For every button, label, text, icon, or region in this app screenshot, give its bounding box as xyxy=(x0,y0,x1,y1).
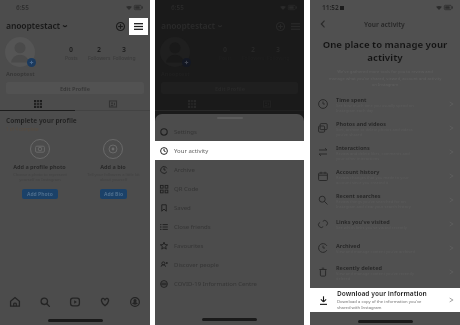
button[interactable]: Home xyxy=(0,293,30,311)
staticText: COVID-19 Information Centre xyxy=(174,280,257,288)
staticText: Add a bio xyxy=(100,163,126,170)
staticText: 3 xyxy=(122,45,127,55)
button[interactable]: Back xyxy=(316,17,330,31)
staticText: 2 xyxy=(251,45,256,55)
staticText: Recent searches xyxy=(336,192,381,199)
button[interactable]: Menu xyxy=(289,15,302,37)
staticText: Download a copy of the information you'v… xyxy=(337,299,422,311)
button[interactable]: Photos and videos xyxy=(310,116,460,140)
staticText: Time spent xyxy=(336,96,367,103)
button[interactable]: Edit Profile xyxy=(6,82,144,94)
staticText: Favourites xyxy=(174,242,204,250)
staticText: anooptestact xyxy=(161,20,216,32)
staticText: 1 of 4 complete xyxy=(6,126,39,132)
staticText: Complete your profile xyxy=(161,116,232,125)
button[interactable]: Links you've visited xyxy=(310,212,460,236)
button[interactable]: Grid tab xyxy=(0,98,75,110)
button[interactable]: Your activity xyxy=(155,141,304,160)
staticText: Anooptest xyxy=(6,70,35,77)
staticText: Followers xyxy=(88,55,111,62)
staticText: Close friends xyxy=(174,223,211,231)
staticText: Links you've visited xyxy=(336,218,390,225)
button[interactable]: COVID-19 Information Centre xyxy=(155,274,304,293)
button[interactable]: Close friends xyxy=(155,217,304,236)
staticText: Download your information xyxy=(337,289,427,298)
button[interactable]: Download your information xyxy=(310,288,460,312)
staticText: 11:52 xyxy=(322,3,339,12)
staticText: QR Code xyxy=(174,185,199,193)
staticText: One place to manage your activity xyxy=(318,38,452,64)
button[interactable]: Add Bio xyxy=(100,189,127,199)
button[interactable]: Recently deleted xyxy=(310,260,460,284)
staticText: Add Photo xyxy=(27,191,53,198)
button[interactable]: Add xyxy=(114,20,127,33)
button[interactable]: Add xyxy=(274,20,287,33)
button[interactable]: Search xyxy=(30,293,60,311)
staticText: 3 xyxy=(276,45,281,55)
button[interactable]: Recent searches xyxy=(310,188,460,212)
staticText: Posts xyxy=(65,55,78,62)
staticText: Your activity xyxy=(364,20,405,29)
staticText: 0 xyxy=(69,45,74,55)
staticText: 6:55 xyxy=(16,3,29,12)
staticText: 0 xyxy=(223,45,228,55)
button[interactable]: Settings xyxy=(155,122,304,141)
staticText: Saved xyxy=(174,204,191,212)
staticText: Photos and videos xyxy=(336,120,386,127)
button[interactable]: Account history xyxy=(310,164,460,188)
staticText: Add Bio xyxy=(104,191,124,198)
staticText: Discover people xyxy=(174,261,219,269)
staticText: 6:55 xyxy=(171,3,184,12)
button[interactable]: Activity xyxy=(90,293,120,311)
button[interactable]: Add Photo xyxy=(22,189,58,199)
button[interactable]: Discover people xyxy=(155,255,304,274)
staticText: Archive xyxy=(174,166,195,174)
staticText: Add a profile photo xyxy=(13,163,66,170)
staticText: Your activity xyxy=(174,147,209,155)
staticText: Complete your profile xyxy=(6,116,77,125)
button[interactable]: Favourites xyxy=(155,236,304,255)
button[interactable]: Saved xyxy=(155,198,304,217)
button[interactable]: Tagged tab xyxy=(75,98,150,110)
button[interactable]: Profile xyxy=(120,293,150,311)
staticText: Archived xyxy=(336,242,361,249)
button[interactable]: Menu xyxy=(129,18,148,35)
staticText: Interactions xyxy=(336,144,370,151)
button[interactable]: Reels xyxy=(60,293,90,311)
staticText: 2 xyxy=(97,45,102,55)
button[interactable]: QR Code xyxy=(155,179,304,198)
staticText: Recently deleted xyxy=(336,264,383,271)
button[interactable]: Archived xyxy=(310,236,460,260)
button[interactable]: Interactions xyxy=(310,140,460,164)
staticText: Edit Profile xyxy=(60,85,90,92)
button[interactable]: Time spent xyxy=(310,92,460,116)
staticText: Settings xyxy=(174,128,197,136)
staticText: anooptestact xyxy=(6,20,61,32)
staticText: Account history xyxy=(336,168,380,175)
staticText: Following xyxy=(113,55,136,62)
